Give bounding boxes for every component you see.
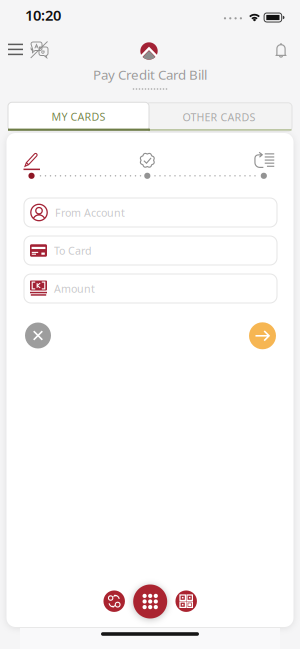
button[interactable]: MY CARDS bbox=[8, 102, 149, 131]
button[interactable]: Cancel bbox=[25, 322, 51, 348]
button[interactable]: Change language bbox=[30, 41, 48, 58]
staticText: OTHER CARDS bbox=[182, 110, 255, 124]
button[interactable]: Transfers bbox=[103, 590, 125, 612]
staticText: 10:20 bbox=[25, 5, 61, 25]
button[interactable]: QR code bbox=[175, 590, 197, 612]
button[interactable]: To Card bbox=[24, 236, 277, 265]
staticText: Pay Credit Card Bill bbox=[93, 66, 207, 83]
button[interactable]: Menu bbox=[133, 584, 167, 618]
staticText: MY CARDS bbox=[51, 109, 105, 124]
button[interactable]: Amount bbox=[24, 274, 277, 303]
button[interactable]: From Account bbox=[24, 198, 277, 227]
staticText: To Card bbox=[54, 243, 92, 258]
button[interactable]: Continue bbox=[249, 322, 276, 349]
staticText: From Account bbox=[55, 205, 125, 220]
staticText: Amount bbox=[54, 281, 95, 296]
button[interactable]: Menu bbox=[8, 44, 23, 55]
button[interactable]: OTHER CARDS bbox=[146, 103, 292, 131]
button[interactable]: Notifications bbox=[275, 43, 287, 58]
